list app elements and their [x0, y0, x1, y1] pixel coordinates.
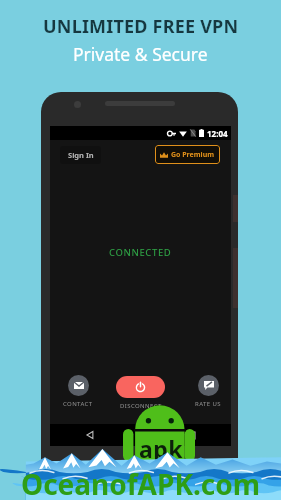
button[interactable]: Back: [80, 425, 100, 445]
staticText: UNLIMITED FREE VPN: [43, 14, 239, 39]
button[interactable]: Home: [131, 425, 151, 445]
button[interactable]: Sign In: [60, 146, 101, 164]
staticText: apk: [139, 433, 184, 464]
staticText: Sign In: [68, 150, 94, 160]
staticText: Go Premium: [171, 150, 215, 160]
button[interactable]: Go Premium: [155, 145, 220, 164]
staticText: DISCONNECT: [120, 402, 162, 410]
staticText: RATE US: [195, 400, 221, 408]
staticText: OceanofAPK.com: [21, 465, 261, 500]
staticText: CONNECTED: [109, 246, 172, 259]
staticText: 12:04: [207, 128, 228, 139]
button[interactable]: DISCONNECT: [116, 376, 165, 410]
button[interactable]: CONTACT: [63, 375, 93, 408]
staticText: Private & Secure: [73, 42, 208, 66]
button[interactable]: Recents: [181, 425, 201, 445]
button[interactable]: RATE US: [195, 375, 221, 408]
staticText: CONTACT: [63, 400, 93, 408]
